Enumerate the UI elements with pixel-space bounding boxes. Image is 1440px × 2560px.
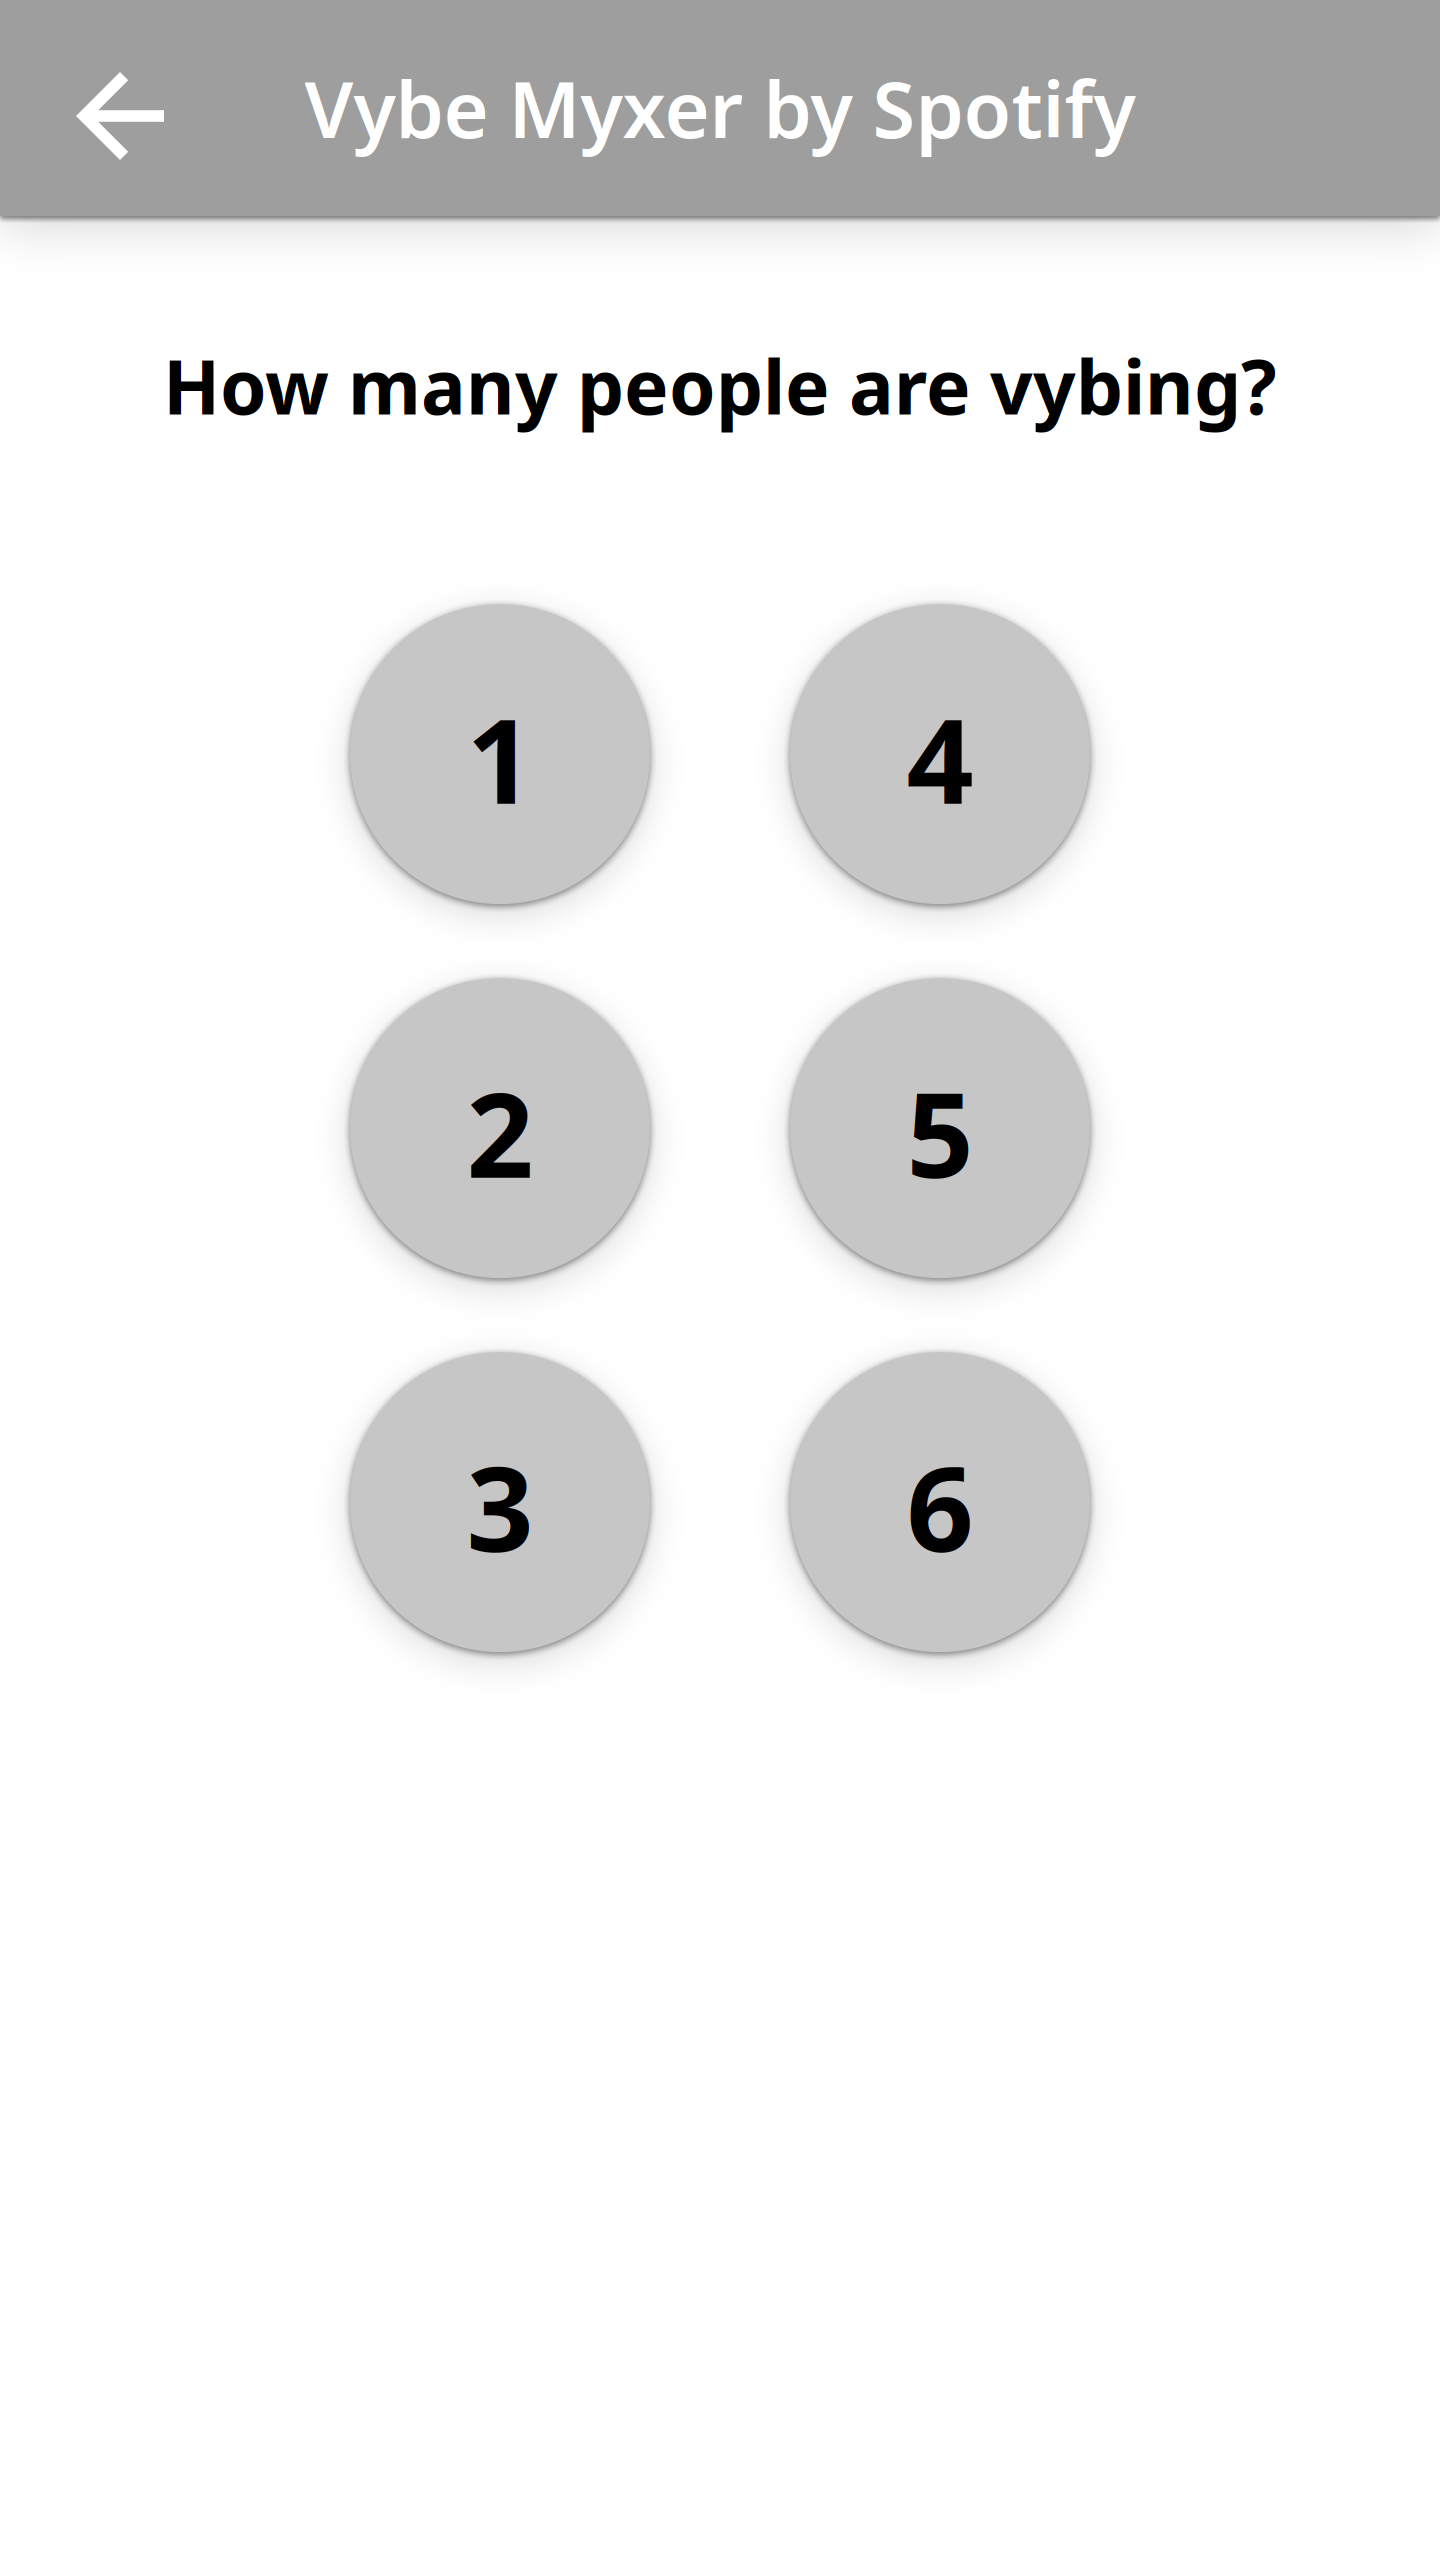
staticText: 1 [466, 680, 533, 836]
staticText: 4 [906, 680, 973, 836]
staticText: How many people are vybing? [163, 336, 1277, 435]
staticText: 2 [466, 1054, 533, 1210]
staticText: 6 [906, 1428, 973, 1584]
button[interactable]: 1 [350, 604, 650, 904]
button[interactable]: 6 [790, 1352, 1090, 1652]
staticText: Vybe Myxer by Spotify [304, 57, 1135, 159]
button[interactable]: 2 [350, 978, 650, 1278]
staticText: 3 [466, 1428, 533, 1584]
button[interactable]: Back [0, 0, 230, 216]
button[interactable]: 4 [790, 604, 1090, 904]
button[interactable]: 5 [790, 978, 1090, 1278]
staticText: 5 [906, 1054, 973, 1210]
button[interactable]: 3 [350, 1352, 650, 1652]
